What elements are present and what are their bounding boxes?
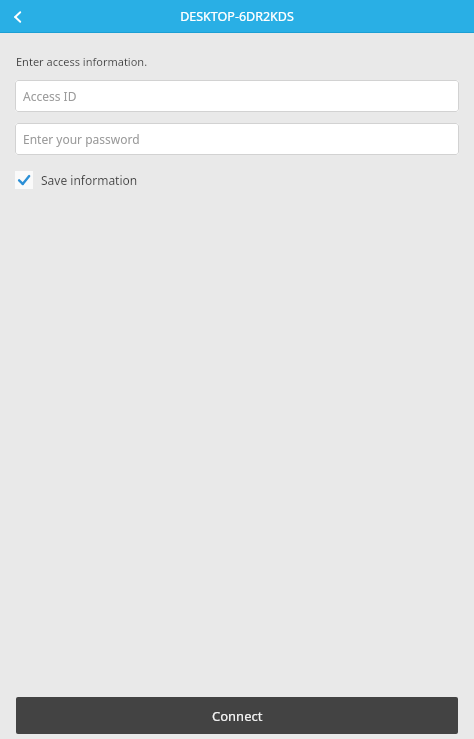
staticText: DESKTOP-6DR2KDS <box>180 8 294 25</box>
staticText: Connect <box>212 707 263 725</box>
staticText: Access ID <box>23 88 77 104</box>
staticText: Enter access information. <box>16 54 148 69</box>
button[interactable]: Access ID <box>15 80 459 112</box>
button[interactable]: Connect <box>16 697 458 734</box>
staticText: Enter your password <box>23 131 140 147</box>
staticText: Save information <box>41 172 138 188</box>
button[interactable]: Enter your password <box>15 123 459 155</box>
button[interactable]: Save information <box>15 167 138 193</box>
button[interactable]: Back <box>0 0 36 33</box>
